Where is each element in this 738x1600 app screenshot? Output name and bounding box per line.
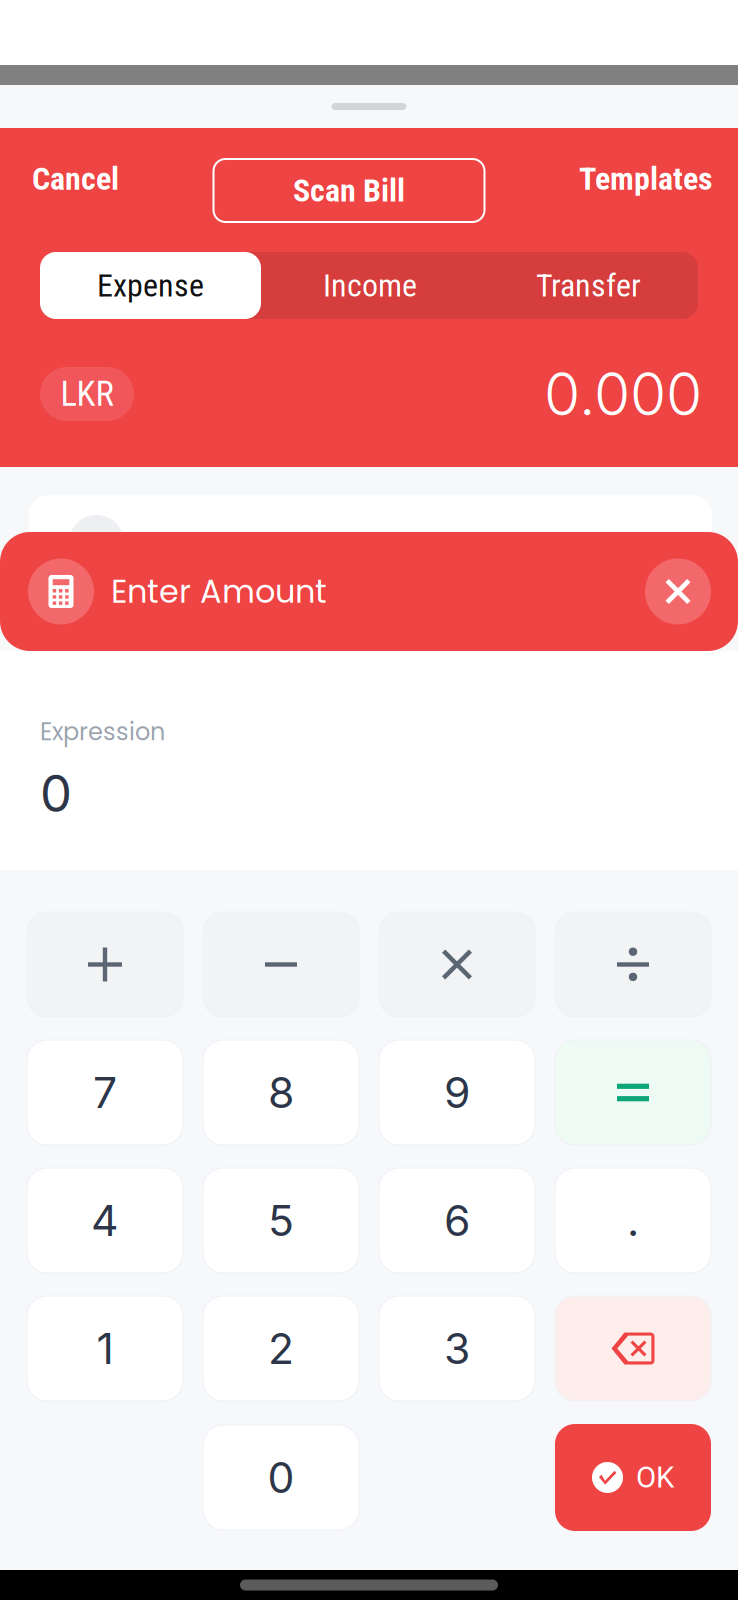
button[interactable]: .	[555, 1168, 711, 1273]
button[interactable]: Divide	[555, 912, 711, 1017]
button[interactable]: Expense	[40, 252, 261, 319]
button[interactable]: 8	[203, 1040, 359, 1145]
button[interactable]: Multiply	[379, 912, 535, 1017]
staticText: .	[627, 1195, 639, 1246]
staticText: 0	[40, 763, 72, 824]
button[interactable]: 6	[379, 1168, 535, 1273]
button[interactable]: Backspace	[555, 1296, 711, 1401]
button[interactable]: 3	[379, 1296, 535, 1401]
button[interactable]: Minus	[203, 912, 359, 1017]
button[interactable]: Close	[645, 558, 711, 624]
button[interactable]: 2	[203, 1296, 359, 1401]
staticText: 0	[267, 1452, 294, 1503]
staticText: 6	[444, 1195, 470, 1246]
button[interactable]: 9	[379, 1040, 535, 1145]
staticText: 4	[91, 1195, 119, 1246]
staticText: Enter Amount	[111, 569, 327, 614]
button[interactable]: 4	[27, 1168, 183, 1273]
button[interactable]: 0	[203, 1425, 359, 1530]
staticText: 3	[444, 1323, 470, 1374]
button[interactable]: 7	[27, 1040, 183, 1145]
staticText: LKR	[60, 374, 113, 414]
staticText: Expense	[97, 267, 204, 304]
staticText: 1	[96, 1323, 113, 1374]
button[interactable]: 1	[27, 1296, 183, 1401]
staticText: Templates	[579, 160, 713, 197]
staticText: 7	[93, 1067, 117, 1118]
staticText: OK	[636, 1460, 674, 1495]
staticText: Income	[323, 267, 417, 304]
staticText: 2	[268, 1323, 294, 1374]
button[interactable]: Templates	[579, 128, 713, 207]
button[interactable]: Equals	[555, 1040, 711, 1145]
button[interactable]: Income	[261, 252, 479, 318]
staticText: 5	[268, 1195, 294, 1246]
button[interactable]: 5	[203, 1168, 359, 1273]
button[interactable]: OK	[555, 1424, 711, 1531]
button[interactable]: LKR	[40, 367, 134, 421]
staticText: Transfer	[536, 267, 641, 304]
button[interactable]: Cancel	[32, 128, 119, 207]
staticText: 8	[268, 1067, 294, 1118]
button[interactable]: Scan Bill	[213, 128, 484, 222]
staticText: 9	[444, 1067, 470, 1118]
staticText: 0.000	[544, 358, 702, 429]
staticText: Cancel	[32, 160, 119, 197]
button[interactable]: Transfer	[479, 252, 698, 318]
staticText: Scan Bill	[293, 172, 405, 209]
staticText: Expression	[40, 715, 165, 749]
button[interactable]: Plus	[27, 912, 183, 1017]
